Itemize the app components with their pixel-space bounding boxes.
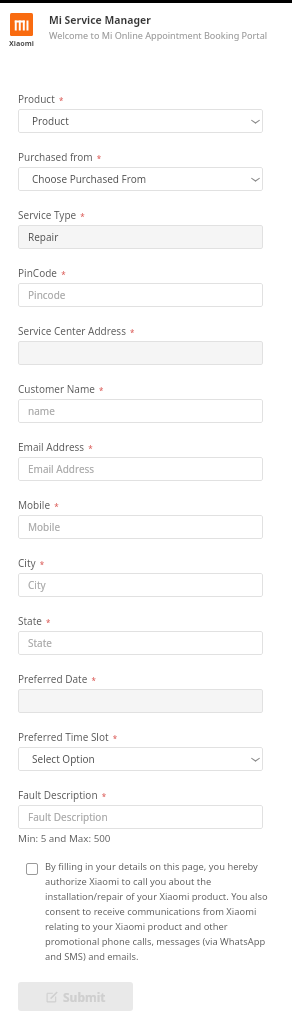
button[interactable]: State	[18, 631, 263, 655]
button[interactable]: By filling in your details on this page,…	[18, 860, 271, 962]
staticText: Welcome to Mi Online Appointment Booking…	[49, 29, 268, 41]
button[interactable]: Submit	[18, 982, 133, 1011]
button[interactable]: Product	[18, 109, 263, 133]
staticText: Mobile *	[18, 498, 59, 512]
staticText: State *	[18, 614, 51, 628]
staticText: Select Option	[32, 752, 95, 766]
staticText: Service Type *	[18, 208, 85, 222]
staticText: Repair	[28, 230, 59, 244]
staticText: Email Address	[28, 462, 95, 476]
staticText: Submit	[63, 989, 106, 1005]
staticText: Product	[32, 114, 69, 128]
staticText: Purchased from *	[18, 150, 102, 164]
staticText: Mobile	[28, 520, 61, 534]
staticText: Pincode	[28, 288, 66, 302]
staticText: Preferred Date *	[18, 672, 96, 686]
staticText: Service Center Address *	[18, 324, 135, 338]
staticText: Email Address *	[18, 440, 93, 454]
button[interactable]	[18, 689, 263, 713]
staticText: Customer Name *	[18, 382, 104, 396]
button[interactable]: Select Option	[18, 747, 263, 771]
staticText: Min: 5 and Max: 500	[18, 832, 111, 845]
button[interactable]: City	[18, 573, 263, 597]
staticText: Fault Description	[28, 810, 108, 824]
button[interactable]: Pincode	[18, 283, 263, 307]
button[interactable]: Repair	[18, 225, 263, 249]
other: Xiaomi logo	[10, 13, 33, 36]
button[interactable]: Choose Purchased From	[18, 167, 263, 191]
staticText: Fault Description *	[18, 788, 107, 802]
staticText: Mi Service Manager	[49, 13, 151, 27]
staticText: Product *	[18, 92, 64, 106]
button[interactable]	[18, 341, 263, 365]
staticText: By filling in your details on this page,…	[45, 860, 268, 962]
staticText: Xiaomi	[9, 38, 34, 48]
staticText: Preferred Time Slot *	[18, 730, 118, 744]
staticText: PinCode *	[18, 266, 66, 280]
staticText: name	[28, 404, 55, 418]
staticText: State	[28, 636, 52, 650]
staticText: City *	[18, 556, 45, 570]
button[interactable]: Mobile	[18, 515, 263, 539]
button[interactable]: name	[18, 399, 263, 423]
staticText: City	[28, 578, 46, 592]
staticText: Choose Purchased From	[32, 172, 147, 186]
button[interactable]: Email Address	[18, 457, 263, 481]
button[interactable]: Fault Description	[18, 805, 263, 829]
